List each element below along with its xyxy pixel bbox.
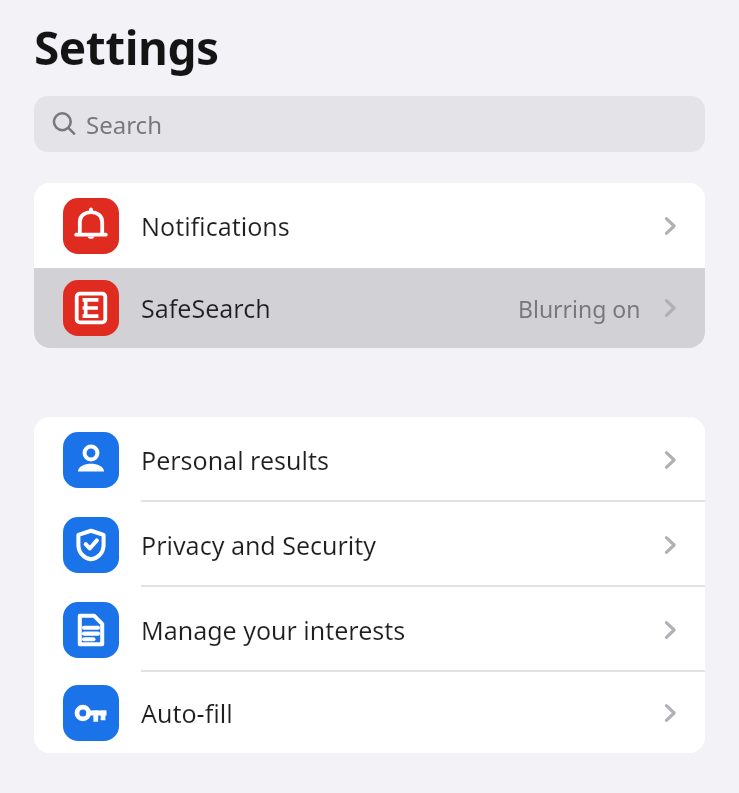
staticText: Settings — [34, 16, 219, 79]
button[interactable]: Manage your interests — [34, 587, 705, 672]
button[interactable]: Auto-fill — [34, 672, 705, 753]
staticText: Notifications — [141, 209, 657, 243]
staticText: Manage your interests — [141, 613, 657, 647]
button[interactable]: Privacy and Security — [34, 502, 705, 587]
staticText: Personal results — [141, 443, 657, 477]
staticText: SafeSearch — [141, 291, 518, 325]
staticText: Blurring on — [518, 293, 641, 324]
button[interactable]: SafeSearch — [34, 268, 705, 348]
button[interactable]: Personal results — [34, 417, 705, 502]
button[interactable]: Search — [34, 96, 705, 152]
staticText: Auto-fill — [141, 696, 657, 730]
staticText: Search — [86, 108, 162, 141]
staticText: Privacy and Security — [141, 528, 657, 562]
button[interactable]: Notifications — [34, 183, 705, 268]
